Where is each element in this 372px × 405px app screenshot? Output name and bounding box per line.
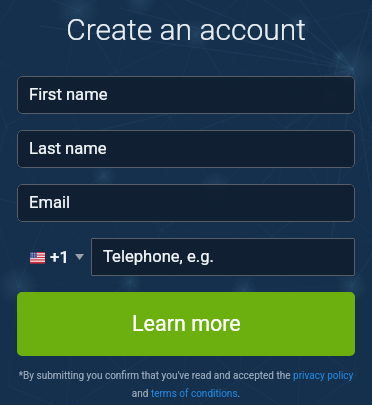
staticText: Create an account	[0, 12, 372, 47]
button[interactable]: Email	[17, 184, 355, 222]
button[interactable]: *By submitting you confirm that you've r…	[16, 370, 356, 399]
staticText: First name	[29, 85, 108, 104]
button[interactable]: Learn more	[17, 292, 355, 356]
button[interactable]: Last name	[17, 130, 355, 168]
staticText: +1	[50, 247, 70, 267]
staticText: Learn more	[132, 311, 241, 336]
button[interactable]: First name	[17, 76, 355, 114]
staticText: Last name	[29, 139, 107, 158]
button[interactable]: Select country code, currently +1	[17, 238, 91, 276]
staticText: Email	[29, 193, 71, 212]
button[interactable]: Telephone, e.g.	[91, 238, 355, 276]
staticText: Telephone, e.g.	[103, 247, 214, 266]
